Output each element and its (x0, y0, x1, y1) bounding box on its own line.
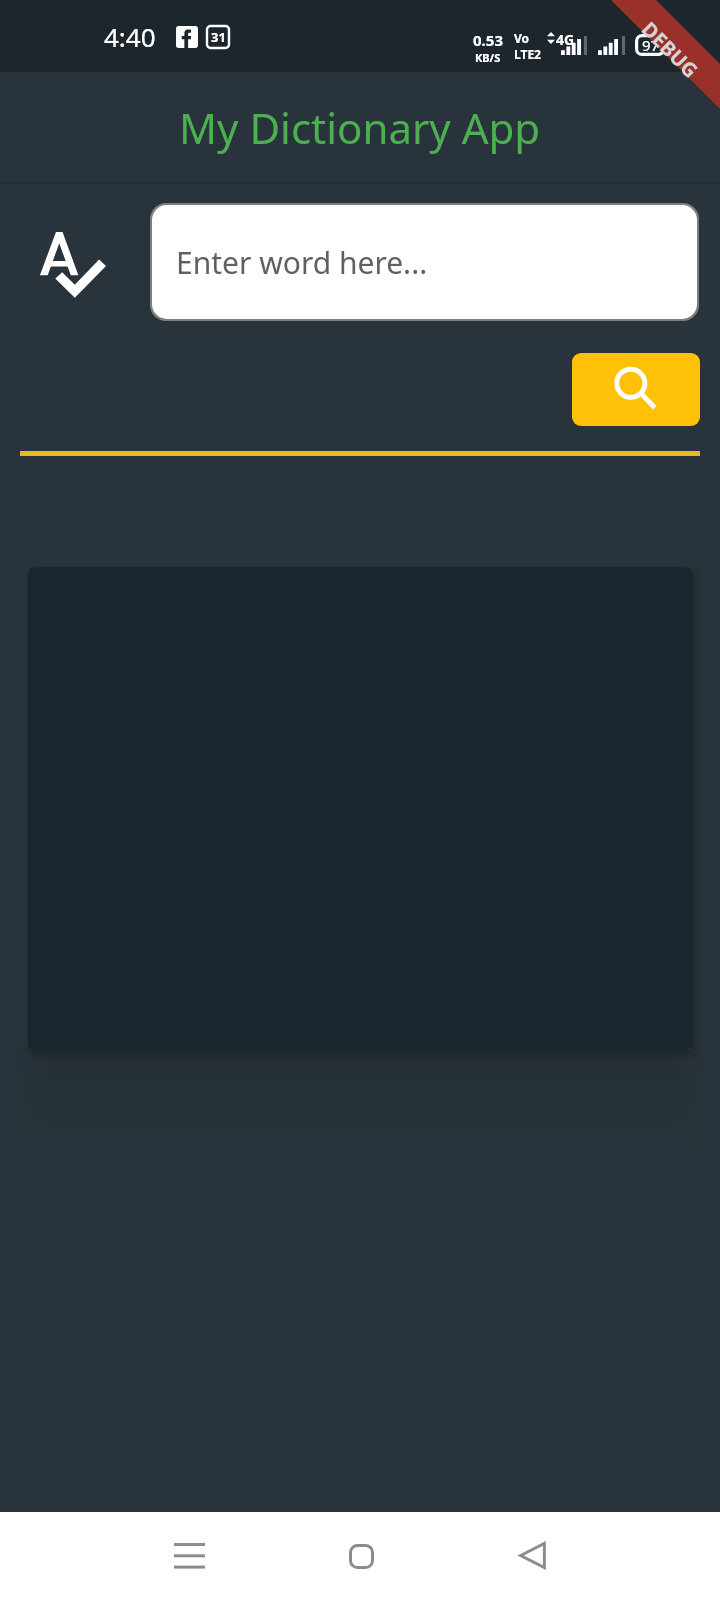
staticText: Enter word here... (176, 242, 428, 283)
staticText: Vo (514, 30, 530, 46)
staticText: 0.53 (473, 30, 503, 50)
button[interactable]: Home (321, 1516, 401, 1596)
staticText: My Dictionary App (179, 99, 541, 156)
staticText: 4G (556, 30, 575, 49)
staticText: 4:40 (104, 19, 156, 54)
button[interactable]: Recents (149, 1516, 229, 1596)
button[interactable]: Search (572, 353, 700, 426)
button[interactable]: Spell check (24, 219, 119, 311)
staticText: LTE2 (514, 46, 541, 62)
staticText: 97 (642, 35, 660, 55)
staticText: KB/S (475, 50, 501, 65)
button[interactable]: Back (492, 1515, 572, 1595)
staticText: DEBUG (636, 16, 704, 84)
staticText: 31 (211, 28, 226, 46)
button[interactable]: Enter word here... (152, 205, 697, 319)
